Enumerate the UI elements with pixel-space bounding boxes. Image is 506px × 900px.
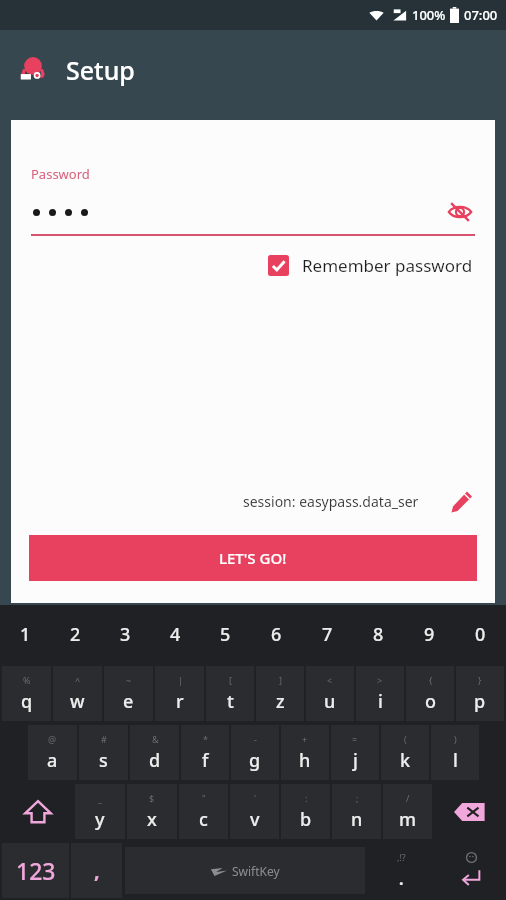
other: App icon <box>16 53 50 87</box>
button[interactable]: # <box>79 725 128 780</box>
button[interactable]: 3 <box>101 605 149 664</box>
button[interactable]: 7 <box>303 605 352 664</box>
staticText: 6 <box>271 622 282 647</box>
button[interactable]: ; <box>332 784 381 839</box>
button[interactable]: > <box>356 666 404 721</box>
staticText: " <box>202 792 206 804</box>
staticText: l <box>453 748 458 773</box>
staticText: x <box>147 807 157 832</box>
button[interactable]: / <box>383 784 432 839</box>
staticText: * <box>203 733 208 745</box>
button[interactable]: Shift <box>1 782 74 841</box>
staticText: c <box>199 807 208 832</box>
button[interactable]: ] <box>256 666 304 721</box>
staticText: i <box>378 689 383 714</box>
button[interactable]: Backspace <box>433 782 505 841</box>
button[interactable]: 4 <box>151 605 199 664</box>
staticText: 123 <box>16 855 56 886</box>
staticText: 7 <box>322 622 333 647</box>
staticText: 2 <box>70 622 81 647</box>
button[interactable]: Remember password <box>268 254 473 277</box>
staticText: & <box>152 733 159 745</box>
staticText: = <box>352 733 358 745</box>
button[interactable]: - <box>231 725 279 780</box>
staticText: e <box>123 689 134 714</box>
staticText: z <box>276 689 285 714</box>
button[interactable]: % <box>2 666 51 721</box>
staticText: m <box>399 807 417 832</box>
button[interactable]: 123 <box>2 843 69 898</box>
button[interactable]: = <box>331 725 379 780</box>
staticText: s <box>99 748 108 773</box>
staticText: f <box>202 748 209 773</box>
staticText: / <box>406 792 410 804</box>
button[interactable]: 8 <box>354 605 403 664</box>
staticText: ( <box>404 733 407 745</box>
staticText: @ <box>48 733 57 745</box>
staticText: ] <box>279 674 282 686</box>
staticText: , <box>94 857 100 884</box>
button[interactable]: * <box>181 725 229 780</box>
staticText: ) <box>454 733 457 745</box>
staticText: ^ <box>75 674 81 686</box>
button[interactable]: ) <box>431 725 479 780</box>
button[interactable]: | <box>155 666 204 721</box>
button[interactable]: $ <box>127 784 177 839</box>
button[interactable]: + <box>281 725 329 780</box>
button[interactable]: < <box>306 666 354 721</box>
staticText: g <box>249 748 261 773</box>
staticText: 3 <box>120 622 131 647</box>
button[interactable]: 2 <box>51 605 99 664</box>
staticText: j <box>353 748 358 773</box>
staticText: { <box>429 674 433 686</box>
staticText: 4 <box>170 622 181 647</box>
button[interactable]: @ <box>28 725 77 780</box>
staticText: _ <box>98 792 102 804</box>
staticText: : <box>305 792 308 804</box>
staticText: SwiftKey <box>232 863 280 879</box>
button[interactable]: ,!? <box>367 841 436 900</box>
button[interactable]: 6 <box>252 605 301 664</box>
staticText: ; <box>356 792 359 804</box>
button[interactable]: 5 <box>201 605 250 664</box>
button[interactable]: ( <box>381 725 429 780</box>
button[interactable]: Enter <box>436 841 505 900</box>
staticText: | <box>178 674 183 686</box>
button[interactable]: LET'S GO! <box>29 535 477 581</box>
button[interactable]: ~ <box>104 666 153 721</box>
button[interactable]: Edit session <box>445 485 477 517</box>
button[interactable]: & <box>130 725 179 780</box>
button[interactable]: Space <box>125 847 365 894</box>
button[interactable]: 0 <box>456 605 505 664</box>
staticText: 07:00 <box>464 6 498 24</box>
button[interactable]: Toggle password visibility <box>443 196 477 228</box>
button[interactable]: [ <box>206 666 254 721</box>
button[interactable]: , <box>71 843 122 898</box>
button[interactable]: ' <box>230 784 279 839</box>
button[interactable]: 9 <box>405 605 454 664</box>
staticText: r <box>176 689 184 714</box>
staticText: 8 <box>373 622 384 647</box>
button[interactable]: } <box>456 666 504 721</box>
staticText: 1 <box>20 622 31 647</box>
staticText: % <box>23 674 31 686</box>
staticText: d <box>149 748 161 773</box>
button[interactable]: { <box>406 666 454 721</box>
button[interactable]: _ <box>75 784 125 839</box>
staticText: k <box>400 748 411 773</box>
staticText: Setup <box>66 53 135 87</box>
button[interactable]: ^ <box>53 666 102 721</box>
staticText: . <box>399 868 404 890</box>
staticText: n <box>351 807 363 832</box>
staticText: ,!? <box>397 851 406 863</box>
button[interactable]: : <box>281 784 330 839</box>
staticText: [ <box>229 674 232 686</box>
staticText: < <box>327 674 333 686</box>
staticText: o <box>425 689 436 714</box>
staticText: t <box>227 689 234 714</box>
staticText: u <box>324 689 336 714</box>
staticText: + <box>302 733 308 745</box>
button[interactable]: 1 <box>1 605 49 664</box>
staticText: v <box>250 807 260 832</box>
button[interactable]: " <box>179 784 228 839</box>
